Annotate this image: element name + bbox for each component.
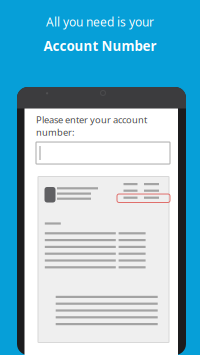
staticText: Please enter your account number: bbox=[36, 113, 147, 138]
staticText: Account Number bbox=[43, 37, 156, 55]
staticText: All you need is your bbox=[46, 14, 154, 30]
